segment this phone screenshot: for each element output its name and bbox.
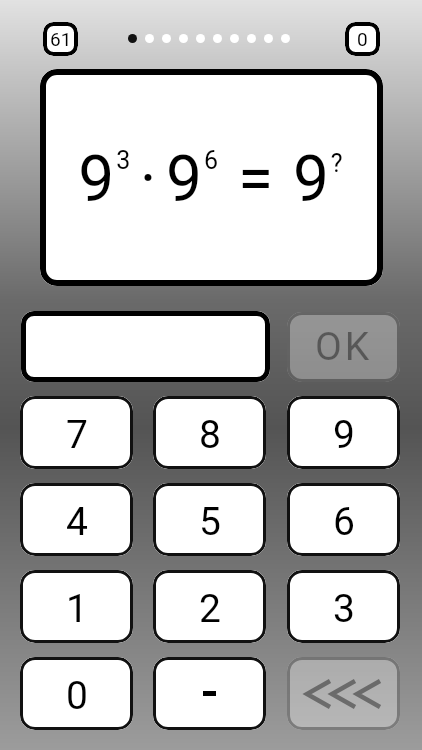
staticText: 1	[66, 586, 88, 632]
button[interactable]: 5	[153, 483, 266, 556]
staticText: 7	[66, 412, 88, 458]
button[interactable]: 0	[20, 657, 133, 730]
staticText: 5	[199, 499, 221, 545]
button[interactable]: 0	[345, 22, 380, 56]
staticText: 9	[333, 412, 355, 458]
button[interactable]	[21, 311, 270, 382]
button[interactable]: 7	[20, 396, 133, 469]
staticText: 93 · 96 = 9?	[78, 142, 345, 217]
staticText: 2	[199, 586, 221, 632]
button[interactable]	[153, 657, 266, 730]
button[interactable]: OK	[287, 312, 400, 382]
button[interactable]	[287, 657, 400, 730]
button[interactable]: 6	[287, 483, 400, 556]
staticText: 0	[357, 28, 368, 50]
staticText: 61	[50, 28, 72, 50]
button[interactable]: 4	[20, 483, 133, 556]
staticText: 8	[199, 412, 221, 458]
staticText: 3	[333, 586, 355, 632]
staticText: 6	[333, 499, 355, 545]
staticText: 0	[66, 673, 88, 719]
button[interactable]: 2	[153, 570, 266, 643]
button[interactable]: 3	[287, 570, 400, 643]
button[interactable]: 9	[287, 396, 400, 469]
button[interactable]: 1	[20, 570, 133, 643]
staticText: OK	[315, 324, 373, 370]
staticText: 4	[66, 499, 88, 545]
button[interactable]: 61	[43, 22, 78, 56]
button[interactable]: 8	[153, 396, 266, 469]
